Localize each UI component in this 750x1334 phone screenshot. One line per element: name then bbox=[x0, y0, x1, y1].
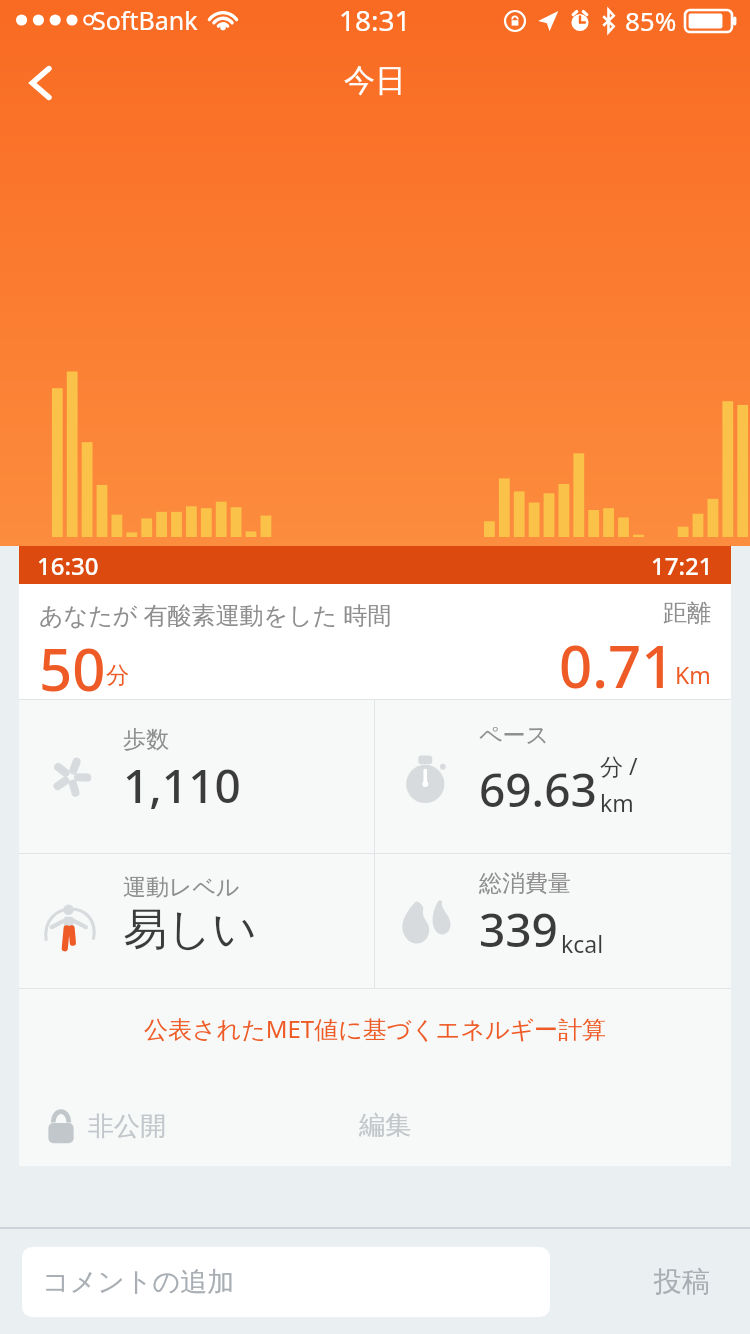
staticText: 易しい bbox=[123, 902, 258, 957]
staticText: 今日 bbox=[344, 61, 406, 100]
staticText: 総消費量 bbox=[479, 869, 571, 898]
staticText: あなたが 有酸素運動をした 時間 bbox=[39, 598, 392, 631]
staticText: 非公開 bbox=[88, 1110, 166, 1143]
staticText: 85% bbox=[625, 3, 677, 38]
staticText: コメントの追加 bbox=[42, 1265, 235, 1299]
button[interactable]: 投稿 bbox=[654, 1264, 710, 1299]
staticText: 分 / km bbox=[600, 750, 638, 819]
staticText: 18:31 bbox=[339, 1, 411, 39]
staticText: 分 bbox=[106, 661, 129, 690]
button[interactable]: コメントの追加 bbox=[22, 1247, 550, 1317]
staticText: 0.71 bbox=[559, 626, 675, 697]
staticText: 1,110 bbox=[123, 754, 241, 817]
button[interactable]: 編集 bbox=[359, 1109, 411, 1142]
staticText: 運動レベル bbox=[123, 873, 240, 902]
staticText: 69.63 bbox=[479, 758, 597, 821]
staticText: ペース bbox=[479, 721, 550, 750]
button[interactable]: ペース bbox=[375, 700, 731, 853]
staticText: 編集 bbox=[359, 1109, 411, 1142]
button[interactable]: 総消費量 bbox=[375, 854, 731, 988]
staticText: 歩数 bbox=[123, 725, 169, 754]
staticText: 距離 bbox=[663, 598, 711, 628]
button[interactable]: 運動レベル bbox=[19, 854, 374, 988]
button[interactable]: 公表されたMET値に基づくエネルギー計算 bbox=[144, 1012, 607, 1045]
button[interactable]: Back bbox=[8, 50, 74, 116]
staticText: kcal bbox=[561, 928, 604, 959]
button[interactable]: 歩数 bbox=[19, 700, 374, 853]
staticText: 投稿 bbox=[654, 1264, 710, 1299]
staticText: 公表されたMET値に基づくエネルギー計算 bbox=[144, 1012, 607, 1045]
button[interactable]: 非公開 bbox=[47, 1108, 166, 1144]
staticText: SoftBank bbox=[92, 3, 198, 37]
staticText: 339 bbox=[479, 898, 558, 961]
staticText: 50 bbox=[39, 629, 106, 697]
staticText: 16:30 bbox=[37, 549, 99, 582]
staticText: 17:21 bbox=[651, 549, 713, 582]
staticText: Km bbox=[675, 659, 711, 690]
